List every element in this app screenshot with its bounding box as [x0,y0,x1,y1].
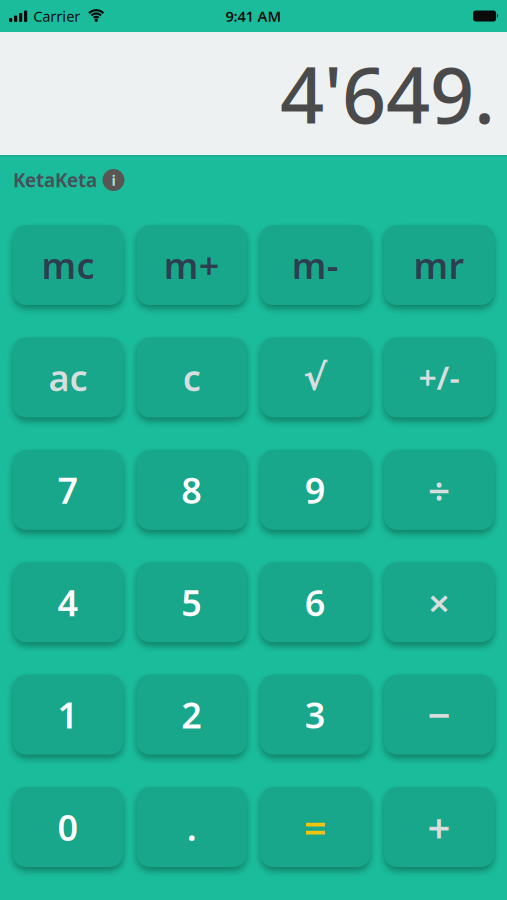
staticText: + [427,800,450,853]
staticText: 0 [57,803,78,851]
staticText: = [304,800,327,853]
button[interactable]: m- [260,225,370,305]
button[interactable]: 4 [13,562,123,642]
button[interactable]: . [137,787,247,867]
button[interactable]: mc [13,225,123,305]
button[interactable]: mr [384,225,494,305]
button[interactable]: √ [260,337,370,417]
staticText: 5 [181,578,202,626]
button[interactable]: m+ [137,225,247,305]
staticText: 8 [181,466,202,514]
staticText: ÷ [428,464,450,515]
staticText: i [111,170,115,190]
staticText: m+ [164,241,220,289]
button[interactable]: 1 [13,675,123,755]
button[interactable]: 9 [260,450,370,530]
staticText: 2 [181,691,202,738]
button[interactable]: About KetaKeta [102,169,124,191]
button[interactable]: 8 [137,450,247,530]
button[interactable]: − [384,675,494,755]
button[interactable]: 0 [13,787,123,867]
button[interactable]: c [137,337,247,417]
staticText: mc [41,241,94,289]
staticText: 4'649. [280,42,495,145]
button[interactable]: ac [13,337,123,417]
staticText: 9 [305,466,326,514]
button[interactable]: +/- [384,337,494,417]
staticText: c [183,353,201,401]
button[interactable]: 7 [13,450,123,530]
staticText: Carrier [33,6,80,26]
staticText: 3 [305,691,326,738]
staticText: √ [303,357,327,398]
staticText: 9:41 AM [225,6,281,26]
staticText: +/- [418,356,459,399]
button[interactable]: = [260,787,370,867]
staticText: 1 [57,691,78,738]
staticText: KetaKeta [13,168,97,192]
staticText: mr [413,241,464,289]
button[interactable]: 3 [260,675,370,755]
button[interactable]: 5 [137,562,247,642]
button[interactable]: 6 [260,562,370,642]
staticText: − [427,688,450,741]
button[interactable]: 2 [137,675,247,755]
staticText: 6 [305,578,326,626]
staticText: × [428,576,450,628]
button[interactable]: ÷ [384,450,494,530]
staticText: m- [292,241,339,289]
staticText: 4 [57,578,78,626]
staticText: 7 [57,466,78,514]
staticText: . [187,803,197,851]
button[interactable]: + [384,787,494,867]
staticText: ac [48,353,87,401]
button[interactable]: × [384,562,494,642]
